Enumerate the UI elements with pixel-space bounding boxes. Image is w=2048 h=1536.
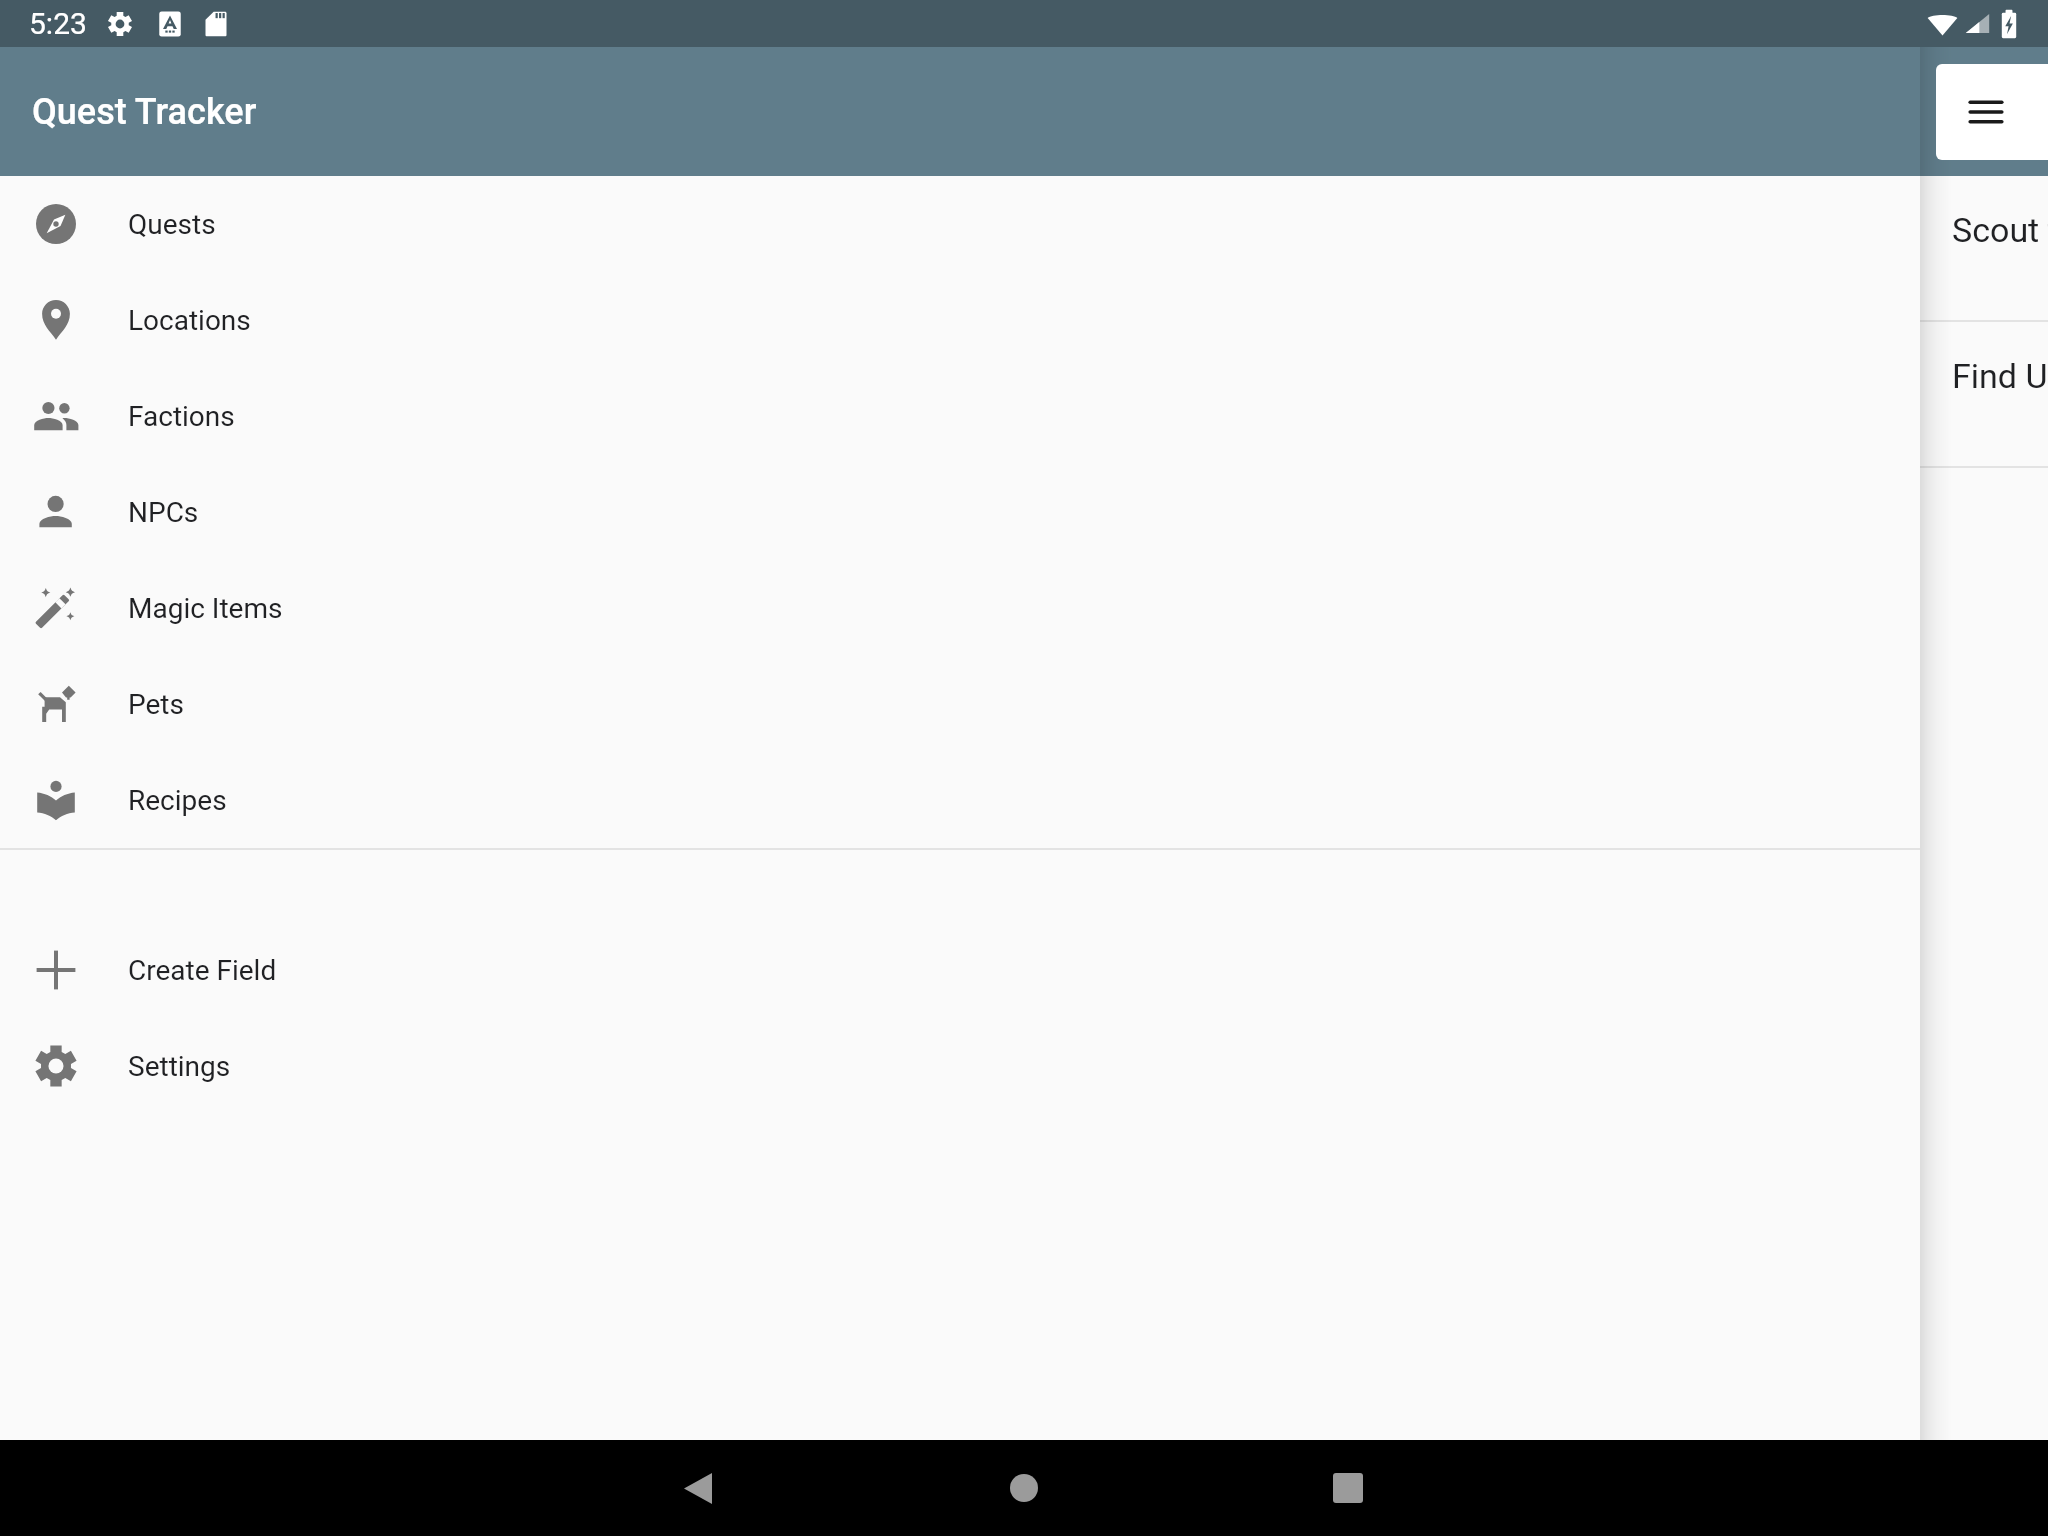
button[interactable]: Create Field [0, 922, 1920, 1018]
staticText: Find Uncle Barrow [1952, 356, 2048, 396]
button[interactable]: Locations [0, 272, 1920, 368]
staticText: NPCs [128, 496, 199, 529]
button[interactable]: Recipes [0, 752, 1920, 848]
staticText: Factions [128, 400, 235, 433]
button[interactable]: Magic Items [0, 560, 1920, 656]
button[interactable]: Find Uncle Barrow [0, 322, 2048, 466]
staticText: Magic Items [128, 592, 283, 625]
staticText: Create Field [128, 954, 277, 987]
button[interactable]: Scout the Ruins [0, 176, 2048, 320]
staticText: Settings [128, 1050, 231, 1083]
button[interactable]: Open navigation menu [1936, 64, 2048, 160]
staticText: Pets [128, 688, 184, 721]
button[interactable]: NPCs [0, 464, 1920, 560]
staticText: Locations [128, 304, 251, 337]
staticText: Quests [128, 208, 216, 241]
staticText: Quest Tracker [32, 91, 257, 133]
button[interactable]: Quests [0, 176, 1920, 272]
button[interactable]: Pets [0, 656, 1920, 752]
button[interactable]: Recent apps [1300, 1440, 1396, 1536]
button[interactable]: Factions [0, 368, 1920, 464]
button[interactable]: Settings [0, 1018, 1920, 1114]
staticText: Scout the Ruins [1952, 210, 2048, 250]
staticText: Recipes [128, 784, 227, 817]
button[interactable]: Home [976, 1440, 1072, 1536]
button[interactable]: Back [650, 1440, 746, 1536]
staticText: 5:23 [29, 6, 87, 41]
